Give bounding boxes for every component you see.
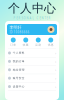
staticText: › [55,75,56,81]
staticText: 订单 [10,43,16,47]
staticText: › [55,84,56,89]
button[interactable]: 个人资料 [5,49,59,57]
button[interactable]: 设置中心 [5,83,59,91]
staticText: › [55,67,56,72]
button[interactable]: 李明轩 [5,21,59,35]
staticText: 账号安全 [13,76,25,80]
button[interactable]: 足迹 [32,37,44,47]
staticText: 个人中心 [8,1,56,16]
staticText: 个人资料 [13,51,25,55]
button[interactable]: 我的订单 [5,57,59,66]
staticText: 李明轩 [9,25,21,30]
staticText: 足迹 [35,43,41,47]
staticText: 地址管理 [13,68,25,71]
staticText: 收藏 [23,43,29,47]
button[interactable]: 地址管理 [5,66,59,74]
staticText: 我的订单 [13,60,25,63]
staticText: ID 10086666 [9,30,29,34]
button[interactable]: 收藏 [19,37,32,47]
staticText: › [55,50,56,56]
button[interactable]: 优惠 [44,37,57,47]
staticText: › [55,59,56,64]
button[interactable]: 订单 [7,37,19,47]
staticText: P E R S O N A L C E N T E R [13,16,50,20]
staticText: 设置中心 [13,85,25,88]
button[interactable]: 账号安全 [5,74,59,83]
staticText: 优惠 [48,43,54,47]
